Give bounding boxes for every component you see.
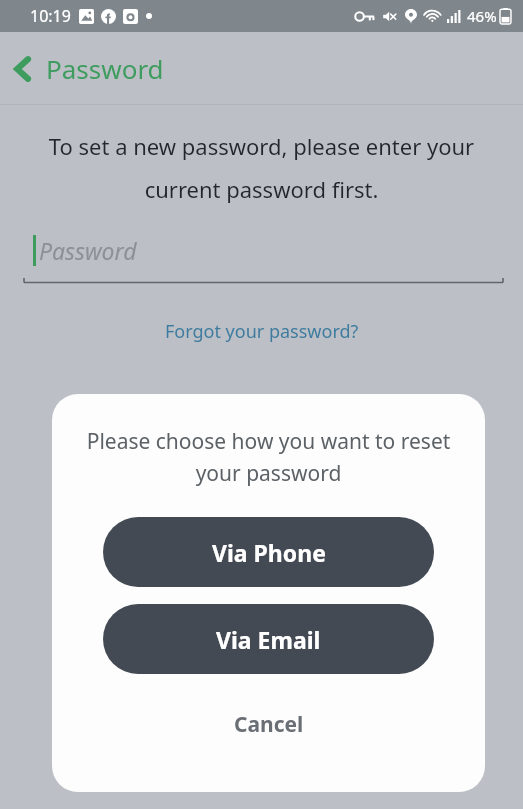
staticText: Cancel [234,710,304,739]
staticText: Via Email [216,624,321,655]
button[interactable]: Cancel [52,696,485,752]
button[interactable]: Password [0,231,523,287]
staticText: Please choose how you want to reset your… [80,427,457,487]
staticText: Forgot your password? [165,319,359,344]
button[interactable]: Via Phone [103,517,434,587]
staticText: Password [39,235,137,266]
staticText: To set a new password, please enter your… [20,131,503,204]
button[interactable]: Forgot your password? [153,315,371,348]
button[interactable]: Via Email [103,604,434,674]
button[interactable]: Back [0,43,182,94]
staticText: 10:19 [30,5,71,27]
staticText: Password [46,51,164,86]
other: Back [14,56,32,82]
staticText: Via Phone [212,537,326,568]
staticText: 46% [467,6,497,26]
